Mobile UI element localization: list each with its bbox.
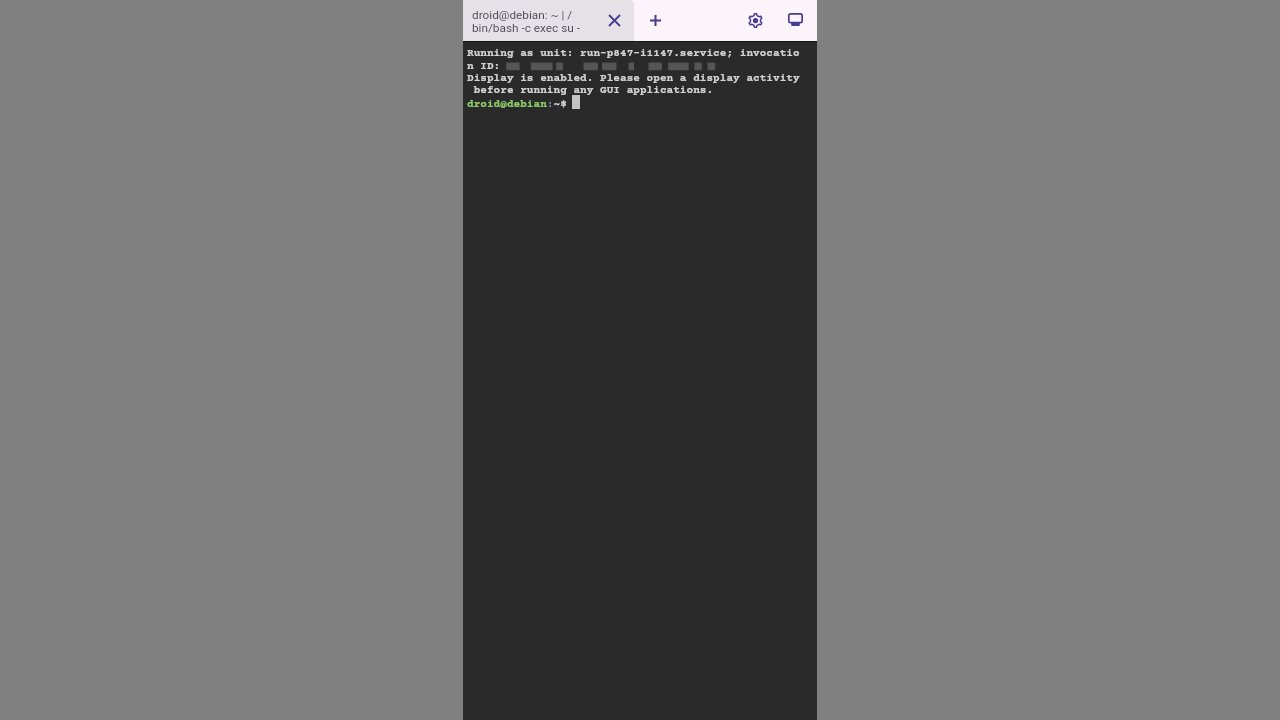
button[interactable]: Settings (729, 0, 773, 41)
staticText: n ID: (467, 60, 507, 72)
button[interactable]: Display (773, 0, 817, 41)
button[interactable]: droid@debian: ~ | /bin/bash -c exec su - (463, 0, 634, 41)
staticText: droid@debian: ~ | /bin/bash -c exec su - (472, 8, 590, 35)
button[interactable]: Close tab (594, 0, 634, 41)
staticText: droid@debian:~$ (467, 98, 574, 110)
staticText: Running as unit: run-p847-i1147.service;… (467, 47, 800, 59)
button[interactable]: New tab (634, 0, 678, 41)
staticText: before running any GUI applications. (467, 84, 714, 96)
staticText: Display is enabled. Please open a displa… (467, 72, 800, 84)
